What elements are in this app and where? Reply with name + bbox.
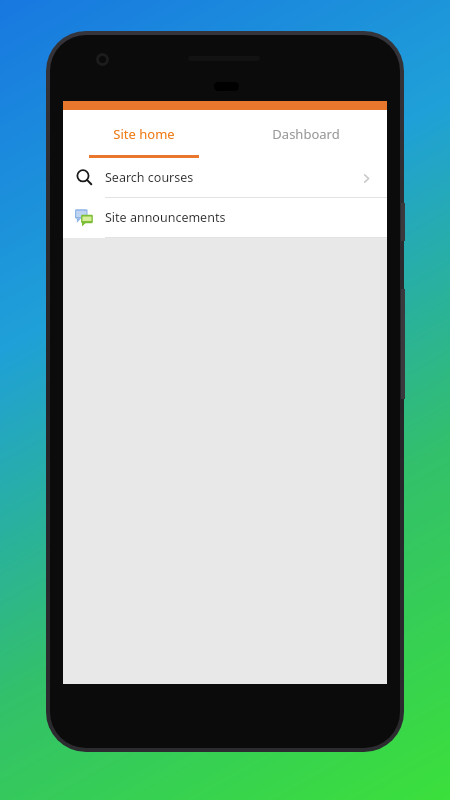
staticText: Dashboard <box>272 125 340 143</box>
button[interactable]: Site home <box>63 110 225 158</box>
button[interactable]: Search courses <box>63 158 387 197</box>
button[interactable]: Dashboard <box>225 110 387 158</box>
staticText: Search courses <box>105 169 194 186</box>
staticText: Site home <box>113 125 175 143</box>
staticText: Site announcements <box>105 209 226 226</box>
button[interactable]: Site announcements <box>63 198 387 237</box>
